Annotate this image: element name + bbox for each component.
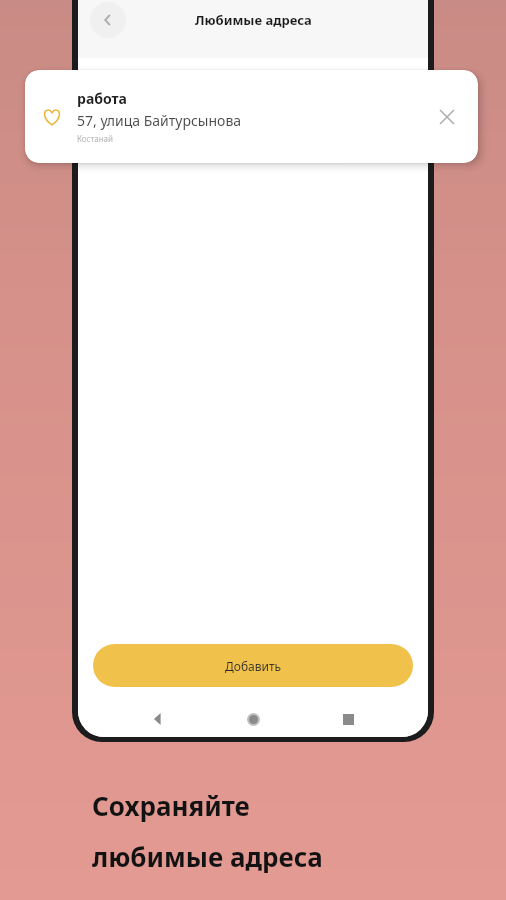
button[interactable]: Recents	[333, 704, 363, 734]
staticText: любимые адреса	[92, 839, 323, 874]
staticText: работа	[77, 89, 127, 108]
button[interactable]: Назад	[90, 2, 126, 38]
staticText: Костанай	[77, 133, 114, 144]
button[interactable]: Home	[238, 704, 268, 734]
staticText: 57, улица Байтурсынова	[77, 111, 242, 130]
staticText: Любимые адреса	[195, 11, 312, 29]
button[interactable]: Back	[143, 704, 173, 734]
staticText: Добавить	[225, 658, 282, 674]
button[interactable]: работа	[25, 70, 478, 163]
button[interactable]: Добавить	[93, 644, 413, 687]
staticText: Сохраняйте	[92, 788, 250, 823]
button[interactable]: Удалить	[432, 102, 462, 132]
